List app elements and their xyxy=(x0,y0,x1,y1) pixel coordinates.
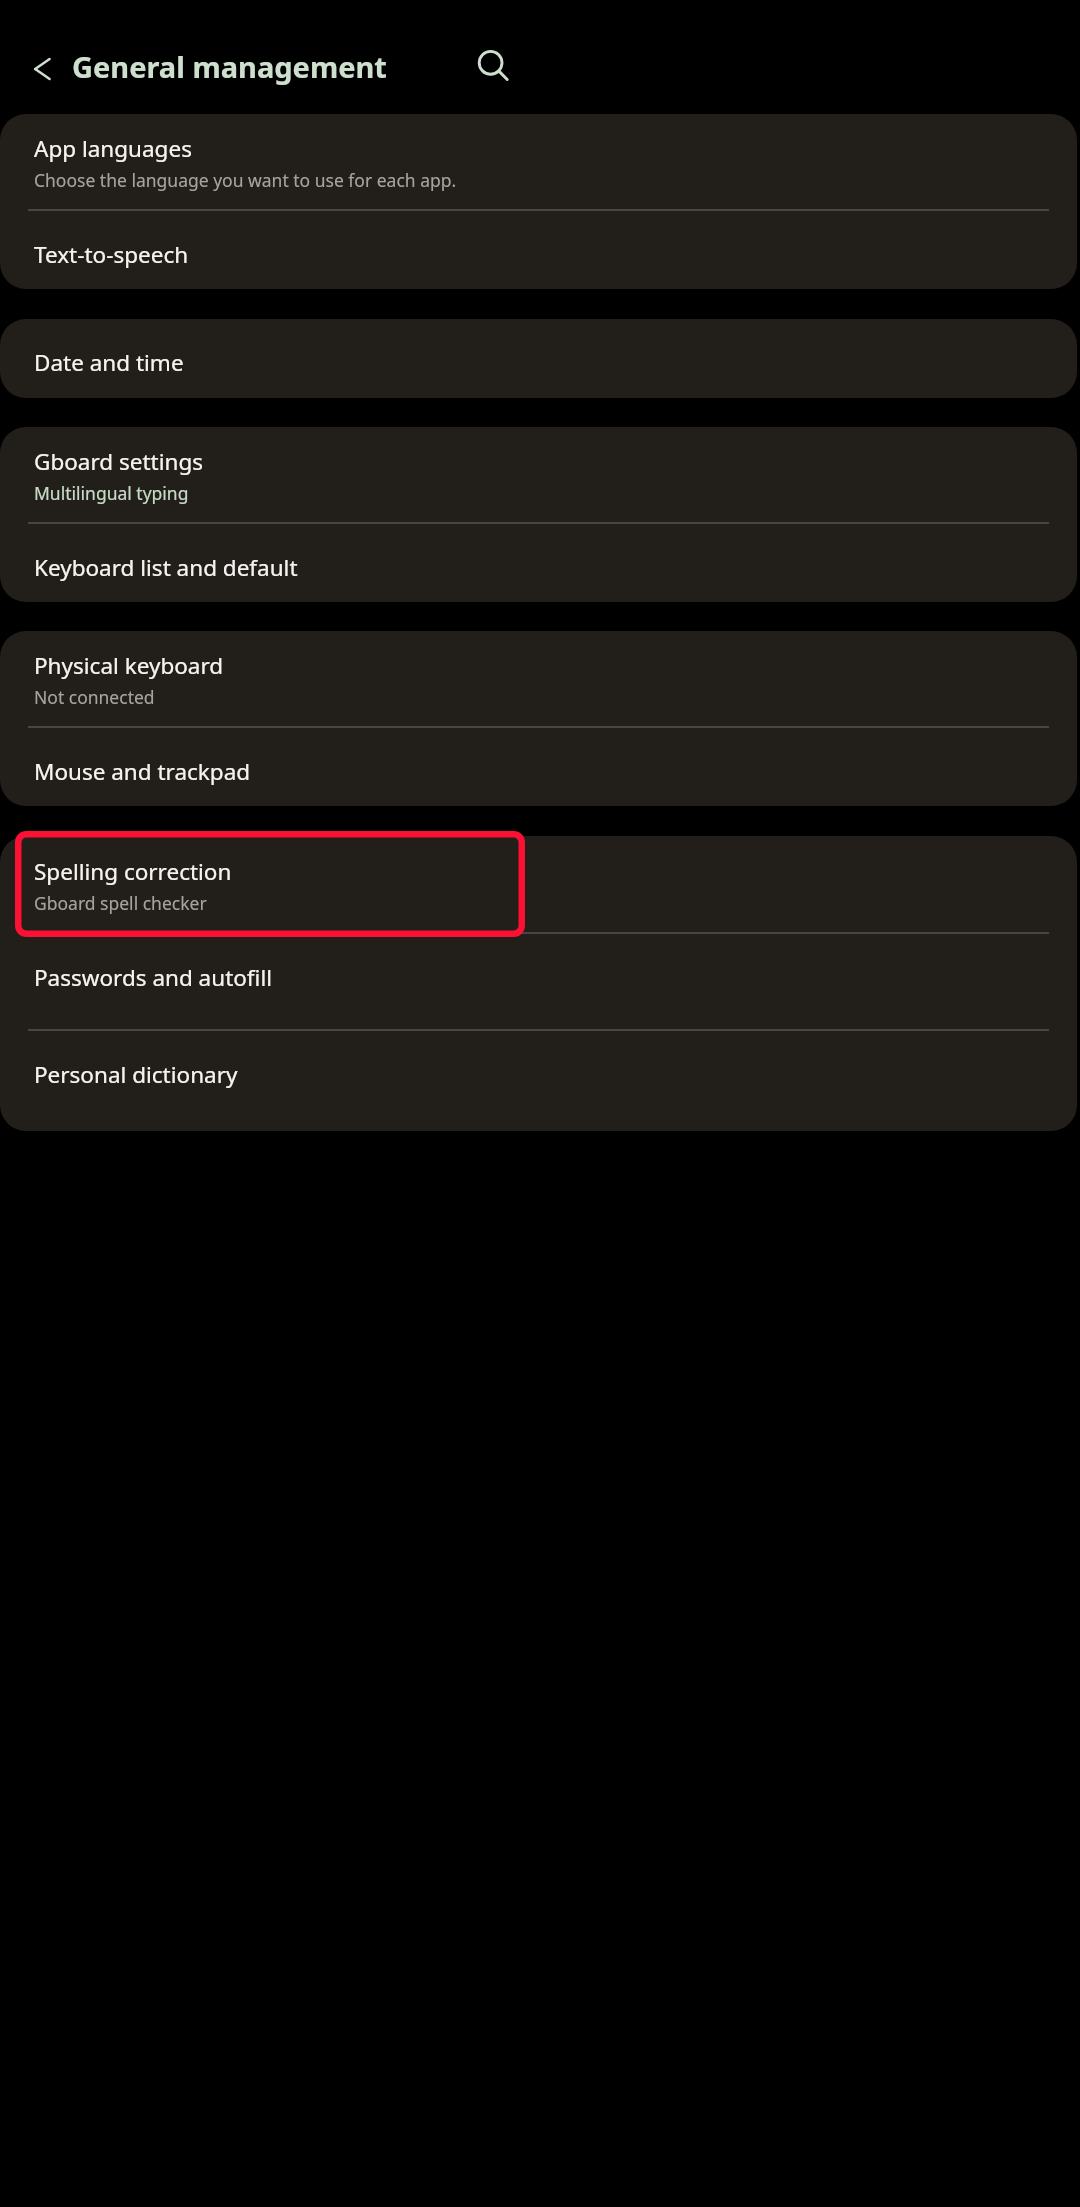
staticText: Keyboard list and default xyxy=(34,552,298,583)
button[interactable]: Back xyxy=(20,49,60,89)
staticText: Date and time xyxy=(34,347,184,378)
staticText: Gboard spell checker xyxy=(34,891,207,915)
button[interactable]: Text-to-speech xyxy=(0,211,1077,289)
button[interactable]: Search xyxy=(473,46,513,86)
button[interactable]: Keyboard list and default xyxy=(0,524,1077,602)
staticText: Physical keyboard xyxy=(34,650,224,681)
staticText: Not connected xyxy=(34,685,155,709)
button[interactable]: Passwords and autofill xyxy=(0,934,1077,1029)
button[interactable]: Physical keyboard xyxy=(0,631,1077,726)
button[interactable]: Gboard settings xyxy=(0,427,1077,522)
staticText: App languages xyxy=(34,133,192,164)
button[interactable]: Personal dictionary xyxy=(0,1031,1077,1131)
staticText: General management xyxy=(72,47,387,86)
button[interactable]: App languages xyxy=(0,114,1077,209)
button[interactable]: Date and time xyxy=(0,319,1077,398)
button[interactable]: Mouse and trackpad xyxy=(0,728,1077,806)
staticText: Spelling correction xyxy=(34,856,232,887)
staticText: Passwords and autofill xyxy=(34,962,273,993)
staticText: Mouse and trackpad xyxy=(34,756,251,787)
staticText: Choose the language you want to use for … xyxy=(34,168,457,192)
staticText: Multilingual typing xyxy=(34,481,189,505)
staticText: Gboard settings xyxy=(34,446,204,477)
staticText: Personal dictionary xyxy=(34,1059,238,1090)
button[interactable]: Spelling correction xyxy=(0,836,1077,932)
staticText: Text-to-speech xyxy=(34,239,189,270)
